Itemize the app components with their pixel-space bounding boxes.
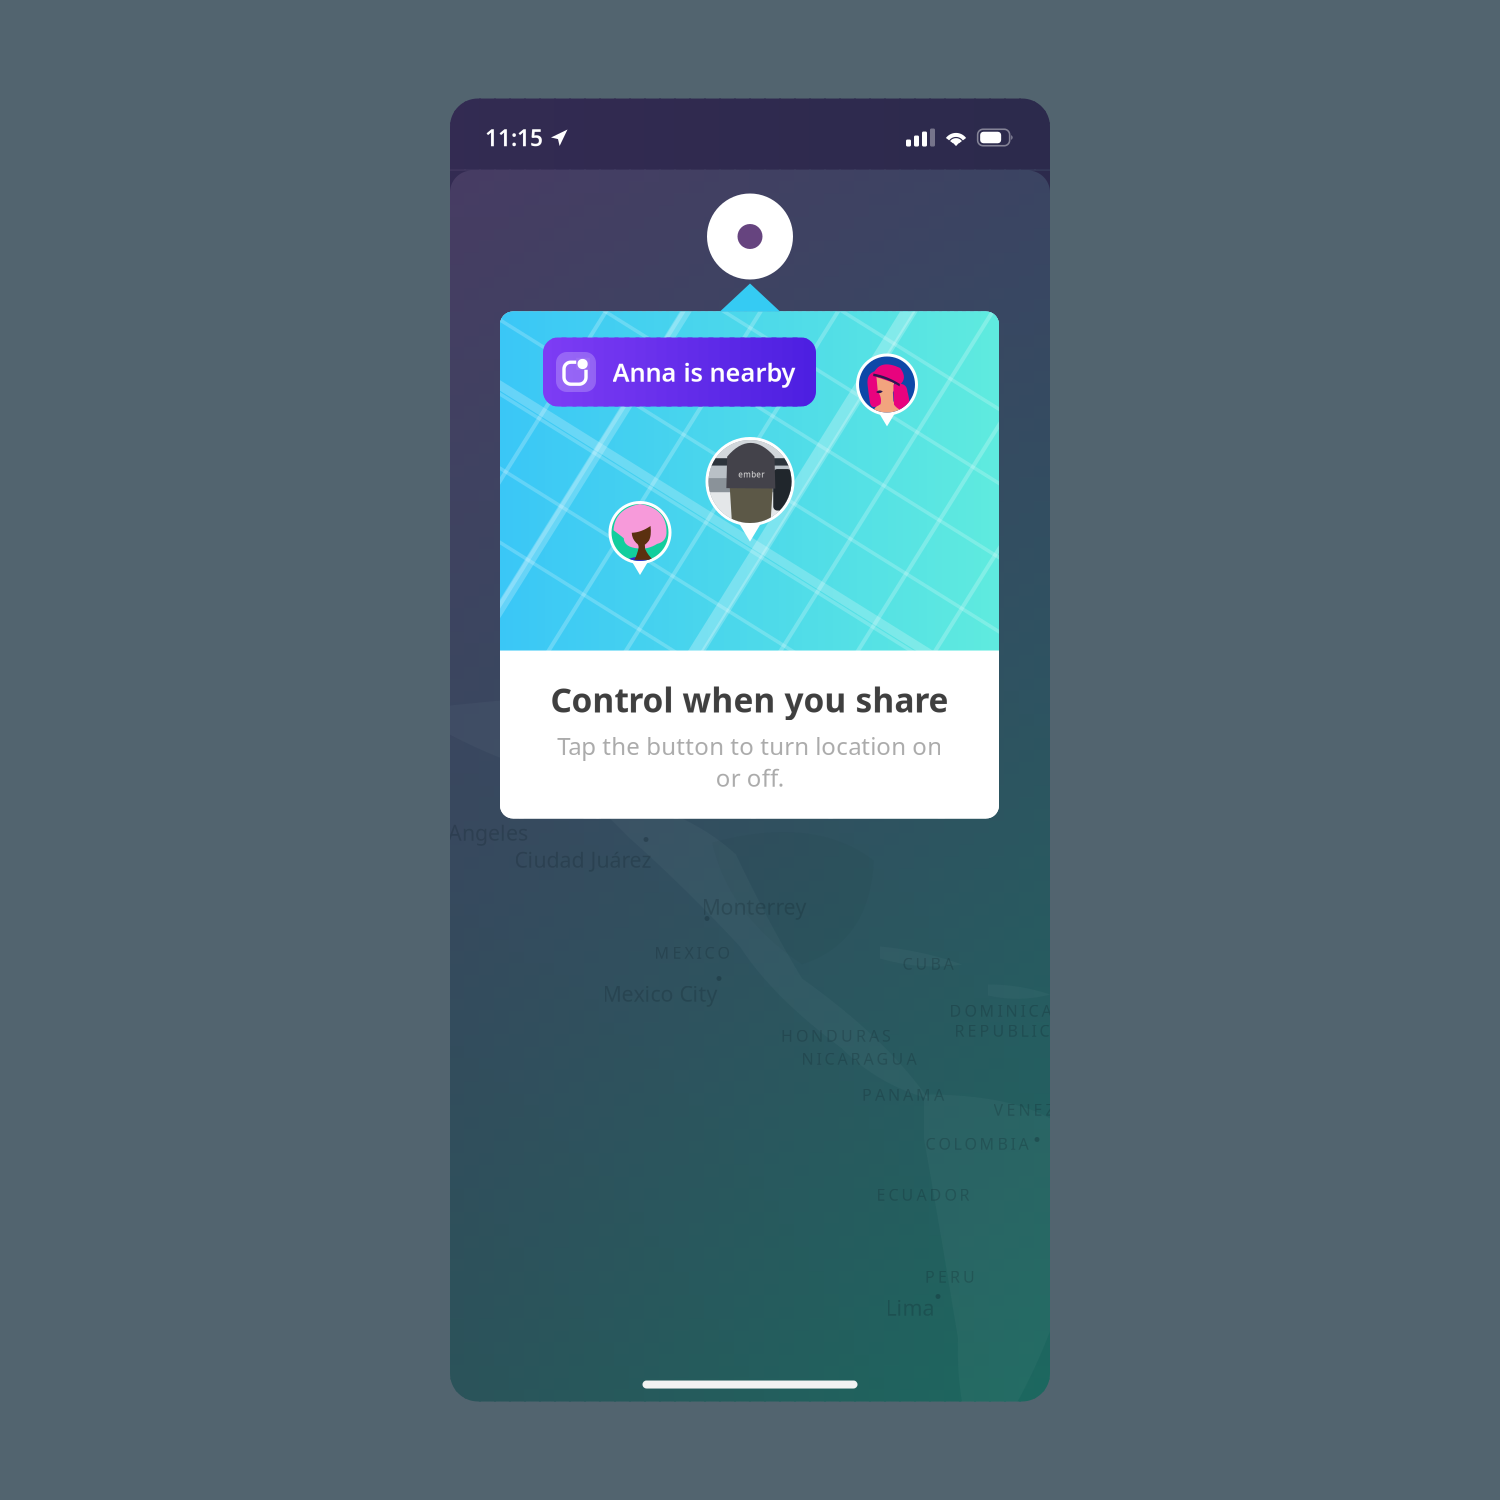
- staticText: 11:15: [485, 122, 543, 152]
- staticText: Tap the button to turn location on or of…: [557, 730, 942, 793]
- button[interactable]: Toggle location sharing: [707, 193, 793, 279]
- staticText: C O L O M B I A: [925, 1133, 1028, 1154]
- staticText: P A N A M A: [862, 1084, 944, 1105]
- staticText: ember: [738, 469, 764, 480]
- staticText: N I C A R A G U A: [801, 1048, 916, 1069]
- staticText: M E X I C O: [654, 942, 729, 963]
- staticText: R E P U B L I C: [954, 1020, 1049, 1041]
- staticText: Ciudad Juárez: [514, 845, 651, 874]
- staticText: Monterrey: [701, 892, 806, 921]
- staticText: Control when you share: [550, 677, 948, 722]
- staticText: Mexico City: [602, 979, 717, 1008]
- staticText: Anna is nearby: [612, 355, 795, 389]
- staticText: C U B A: [902, 953, 953, 974]
- staticText: E C U A D O R: [876, 1184, 969, 1205]
- staticText: Lima: [885, 1293, 934, 1322]
- staticText: D O M I N I C A N: [949, 1000, 1066, 1021]
- staticText: H O N D U R A S: [781, 1025, 891, 1046]
- staticText: Angeles: [448, 818, 528, 847]
- button[interactable]: Anna is nearby: [543, 337, 816, 406]
- staticText: V E N E Z: [993, 1099, 1054, 1120]
- staticText: P E R U: [925, 1266, 975, 1287]
